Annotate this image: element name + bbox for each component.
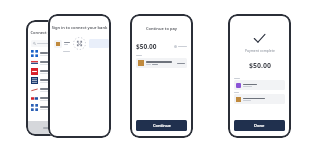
button[interactable]: Face ID (73, 37, 86, 50)
staticText: Payment complete (245, 48, 275, 53)
button[interactable] (31, 85, 67, 94)
button[interactable] (31, 49, 67, 58)
button[interactable]: Done (234, 120, 285, 131)
staticText: Sign in to connect your bank (50, 25, 109, 30)
button[interactable] (31, 103, 67, 112)
staticText: Done (254, 123, 265, 128)
button[interactable]: Continue (136, 120, 187, 131)
button[interactable] (28, 121, 70, 134)
staticText: Continue (153, 123, 171, 128)
button[interactable] (234, 80, 285, 90)
staticText: Continue to pay (132, 26, 191, 31)
button[interactable] (234, 94, 285, 104)
button[interactable] (31, 58, 67, 67)
staticText: $50.00 (136, 42, 157, 51)
staticText: $50.00 (249, 61, 271, 71)
button[interactable] (31, 76, 67, 85)
button[interactable] (31, 40, 67, 47)
button[interactable] (136, 58, 187, 68)
button[interactable] (31, 67, 67, 76)
staticText: Connect your bank (28, 30, 70, 35)
button[interactable] (31, 94, 67, 103)
button[interactable] (54, 40, 62, 48)
